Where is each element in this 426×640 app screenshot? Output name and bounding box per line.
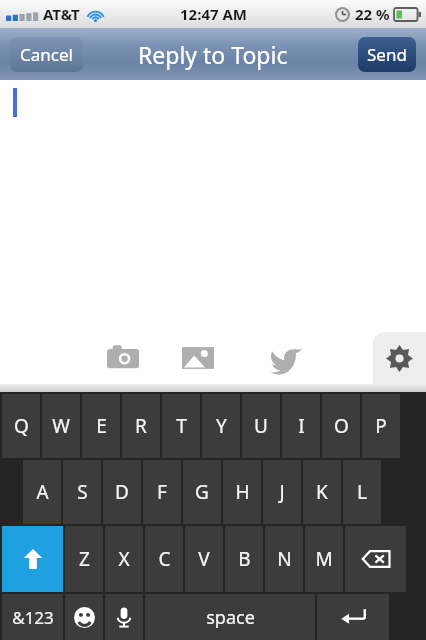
button[interactable]: U bbox=[242, 394, 280, 458]
button[interactable]: Camera bbox=[92, 332, 154, 384]
staticText: B bbox=[238, 546, 251, 572]
button[interactable]: H bbox=[223, 460, 261, 524]
button[interactable]: W bbox=[42, 394, 80, 458]
staticText: W bbox=[52, 413, 70, 439]
staticText: AT&T bbox=[43, 4, 80, 24]
button[interactable]: N bbox=[265, 526, 303, 592]
staticText: V bbox=[198, 546, 210, 572]
staticText: I bbox=[298, 413, 305, 439]
button[interactable]: Send bbox=[358, 37, 416, 72]
button[interactable]: E bbox=[82, 394, 120, 458]
button[interactable]: R bbox=[122, 394, 160, 458]
staticText: K bbox=[316, 479, 328, 505]
staticText: M bbox=[315, 546, 333, 572]
staticText: S bbox=[77, 479, 88, 505]
staticText: Q bbox=[14, 413, 29, 439]
staticText: D bbox=[115, 479, 129, 505]
button[interactable]: X bbox=[105, 526, 143, 592]
staticText: Y bbox=[216, 413, 227, 439]
button[interactable]: C bbox=[145, 526, 183, 592]
button[interactable]: Q bbox=[2, 394, 40, 458]
button[interactable]: P bbox=[362, 394, 400, 458]
staticText: X bbox=[118, 546, 130, 572]
staticText: O bbox=[334, 413, 349, 439]
staticText: Send bbox=[367, 43, 407, 66]
button[interactable]: F bbox=[143, 460, 181, 524]
staticText: H bbox=[235, 479, 250, 505]
button[interactable]: G bbox=[183, 460, 221, 524]
staticText: N bbox=[277, 546, 292, 572]
staticText: R bbox=[135, 413, 147, 439]
staticText: space bbox=[206, 605, 255, 630]
button[interactable]: J bbox=[263, 460, 301, 524]
button[interactable]: A bbox=[23, 460, 61, 524]
button[interactable]: Voice input bbox=[105, 594, 143, 640]
button[interactable]: O bbox=[322, 394, 360, 458]
staticText: Z bbox=[79, 546, 90, 572]
button[interactable]: Photos bbox=[154, 332, 242, 384]
staticText: A bbox=[36, 479, 49, 505]
button[interactable]: Z bbox=[65, 526, 103, 592]
button[interactable]: &123 bbox=[2, 594, 63, 640]
button[interactable]: Emoji bbox=[65, 594, 103, 640]
button[interactable]: B bbox=[225, 526, 263, 592]
button[interactable]: space bbox=[145, 594, 315, 640]
staticText: E bbox=[96, 413, 107, 439]
button[interactable]: Twitter bbox=[242, 332, 330, 384]
button[interactable]: M bbox=[305, 526, 343, 592]
staticText: &123 bbox=[12, 606, 54, 629]
staticText: 22 % bbox=[355, 4, 390, 24]
button[interactable]: Cancel bbox=[10, 37, 83, 72]
button[interactable]: V bbox=[185, 526, 223, 592]
button[interactable]: T bbox=[162, 394, 200, 458]
staticText: C bbox=[158, 546, 171, 572]
button[interactable]: D bbox=[103, 460, 141, 524]
button[interactable]: Settings bbox=[373, 332, 426, 384]
button[interactable]: S bbox=[63, 460, 101, 524]
staticText: 12:47 AM bbox=[180, 4, 247, 24]
staticText: L bbox=[357, 479, 367, 505]
staticText: J bbox=[279, 479, 285, 505]
button[interactable]: Enter bbox=[317, 594, 389, 640]
button[interactable]: Y bbox=[202, 394, 240, 458]
button[interactable]: I bbox=[282, 394, 320, 458]
staticText: F bbox=[157, 479, 167, 505]
staticText: Reply to Topic bbox=[138, 39, 288, 70]
staticText: P bbox=[375, 413, 387, 439]
button[interactable]: K bbox=[303, 460, 341, 524]
staticText: U bbox=[254, 413, 268, 439]
staticText: Cancel bbox=[20, 43, 73, 66]
button[interactable]: L bbox=[343, 460, 381, 524]
staticText: T bbox=[176, 413, 187, 439]
button[interactable]: Backspace bbox=[345, 526, 406, 592]
staticText: G bbox=[195, 479, 209, 505]
button[interactable]: Shift bbox=[2, 526, 63, 592]
